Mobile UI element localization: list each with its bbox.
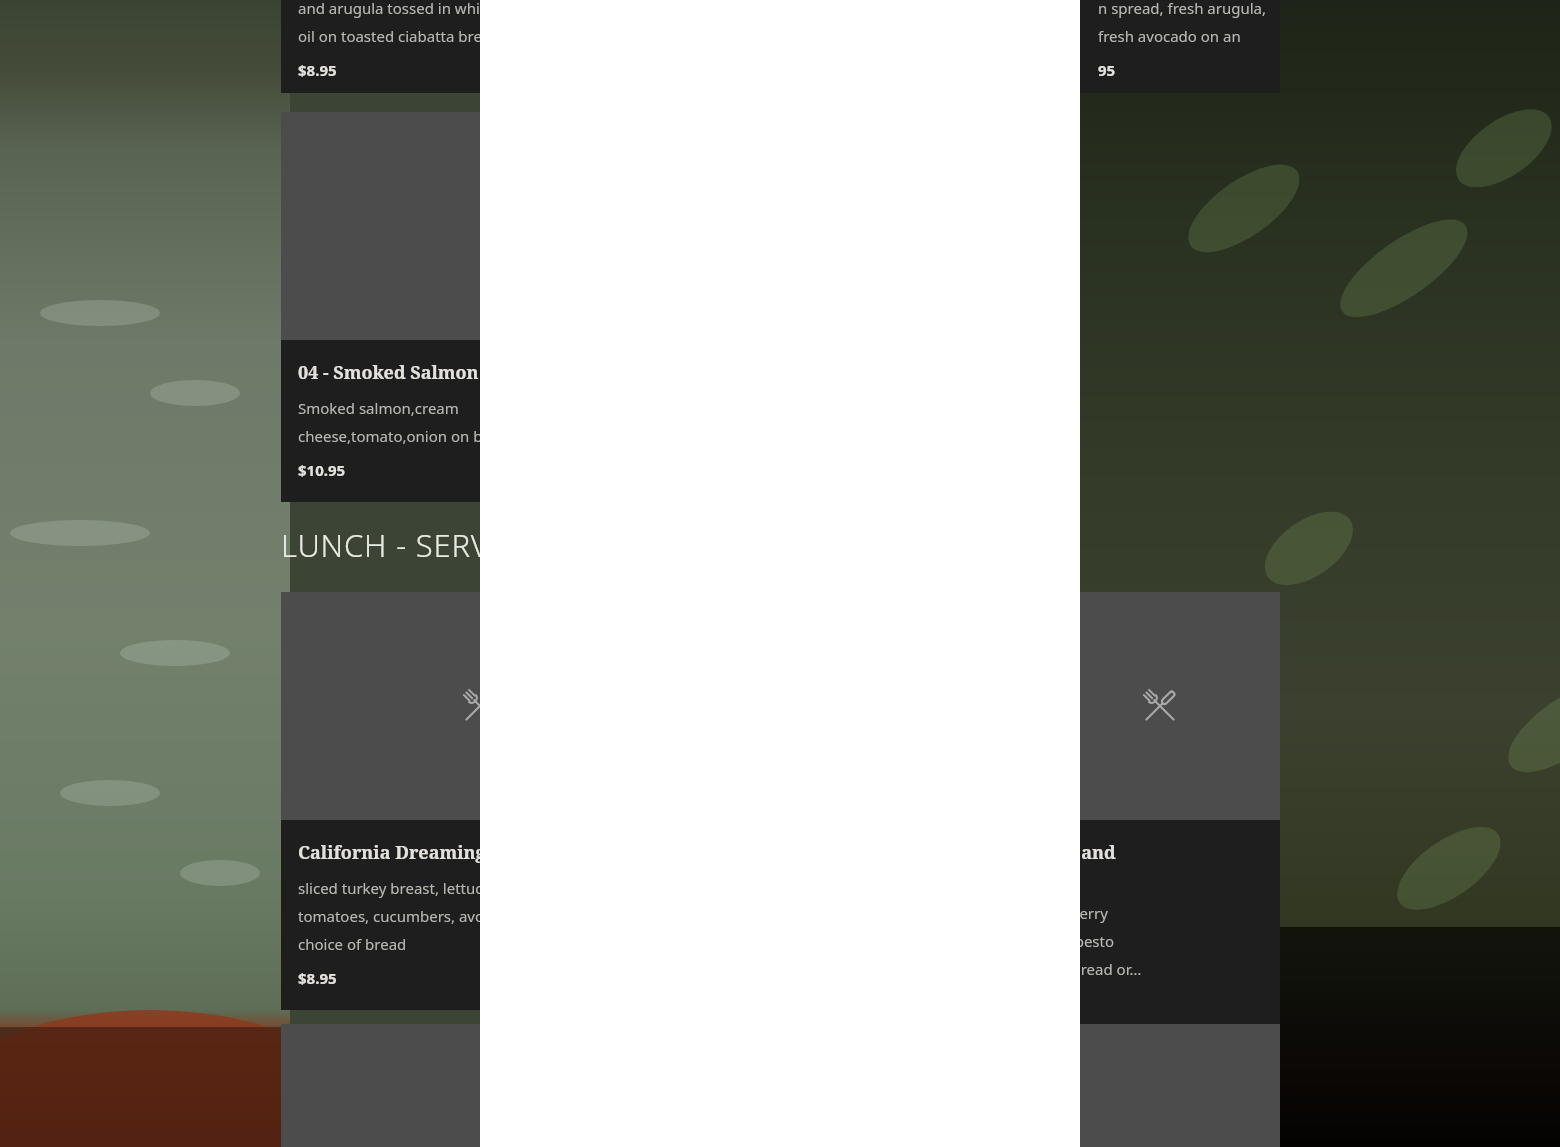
staticText: and arugula tossed in white truffle [298, 0, 542, 18]
staticText: LUNCH - SERVING 11AM [281, 524, 641, 566]
staticText: sliced turkey breast, lettuce, [298, 878, 495, 898]
other: Menu item photo placeholder [456, 682, 504, 730]
staticText: 95 [1098, 60, 1116, 80]
staticText: $10.95 [298, 460, 346, 480]
staticText: California Dreaming [298, 840, 486, 865]
staticText: Smoked salmon,cream [298, 398, 459, 418]
other: Menu item photo placeholder [1136, 682, 1184, 730]
staticText: tomatoes, cucumbers, avocado [298, 906, 518, 926]
button[interactable]: 04 - Smoked Salmon [281, 112, 680, 502]
button[interactable]: Menu item photo placeholder [281, 1024, 680, 1147]
staticText: choice of bread [298, 934, 407, 954]
button[interactable]: Menu item photo placeholder [881, 592, 1280, 1035]
button[interactable]: and arugula tossed in white truffle [281, 0, 680, 93]
staticText: Grilled honey ham, hot cherry [898, 903, 1108, 923]
staticText: cheese,tomato,onion on bagel [298, 426, 513, 446]
button[interactable]: n spread, fresh arugula, tomato [881, 0, 1280, 93]
staticText: Spicy Berkeley ham and [898, 840, 1116, 865]
button[interactable]: Menu item photo placeholder [881, 1024, 1280, 1147]
staticText: mayo. Choice of cheese, bread or… [898, 959, 1142, 979]
button[interactable]: Menu item photo placeholder [281, 592, 680, 1010]
staticText: fresh avocado on an English… [1098, 26, 1280, 46]
staticText: $8.95 [298, 968, 337, 988]
staticText: $8.95 [298, 60, 337, 80]
staticText: n spread, fresh arugula, tomato [1098, 0, 1280, 18]
staticText: peppers and our creamy pesto [898, 931, 1115, 951]
staticText: 04 - Smoked Salmon [298, 360, 479, 385]
staticText: oil on toasted ciabatta bread. [298, 26, 504, 46]
